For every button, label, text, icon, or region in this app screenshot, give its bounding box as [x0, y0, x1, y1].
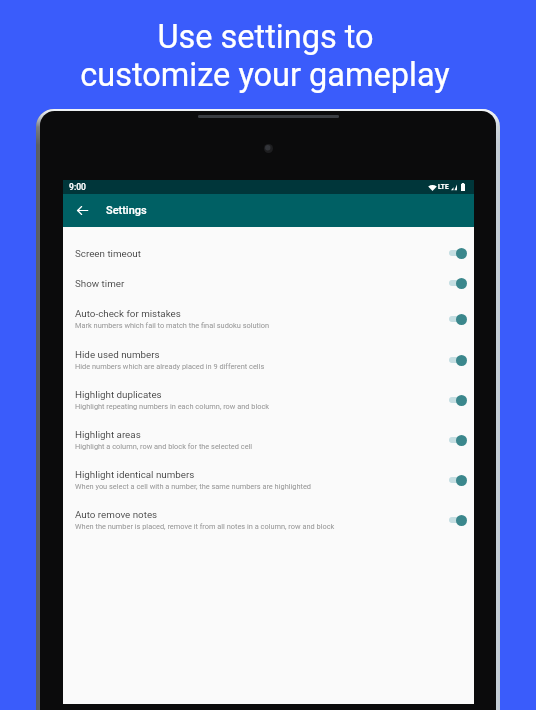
button[interactable]: Auto remove notes [63, 500, 474, 540]
staticText: 9:00 [69, 182, 86, 192]
staticText: Hide numbers which are already placed in… [75, 362, 265, 371]
staticText: Auto remove notes [75, 509, 158, 520]
button[interactable]: Toggle setting [442, 311, 466, 327]
staticText: Highlight a column, row and block for th… [75, 442, 253, 451]
staticText: Settings [106, 204, 147, 217]
staticText: Use settings to [157, 18, 374, 56]
staticText: Screen timeout [75, 248, 141, 259]
staticText: Mark numbers which fail to match the fin… [75, 321, 270, 330]
button[interactable]: Back [63, 194, 101, 227]
button[interactable]: Highlight areas [63, 420, 474, 460]
button[interactable]: Auto-check for mistakes [63, 298, 474, 339]
button[interactable]: Show timer [63, 268, 474, 298]
button[interactable]: Highlight identical numbers [63, 460, 474, 500]
button[interactable]: Toggle setting [442, 245, 466, 261]
staticText: Show timer [75, 278, 125, 289]
staticText: Highlight repeating numbers in each colu… [75, 402, 270, 411]
button[interactable]: Toggle setting [442, 432, 466, 448]
button[interactable]: Toggle setting [442, 512, 466, 528]
staticText: When you select a cell with a number, th… [75, 482, 312, 491]
staticText: Highlight identical numbers [75, 469, 195, 480]
button[interactable]: Toggle setting [442, 472, 466, 488]
staticText: When the number is placed, remove it fro… [75, 522, 335, 531]
staticText: Auto-check for mistakes [75, 308, 181, 319]
button[interactable]: Toggle setting [442, 392, 466, 408]
button[interactable]: Toggle setting [442, 352, 466, 368]
staticText: customize your gameplay [80, 56, 450, 94]
staticText: Highlight duplicates [75, 389, 162, 400]
button[interactable]: Highlight duplicates [63, 380, 474, 420]
button[interactable]: Hide used numbers [63, 339, 474, 380]
button[interactable]: Screen timeout [63, 238, 474, 268]
staticText: Highlight areas [75, 429, 141, 440]
button[interactable]: Toggle setting [442, 275, 466, 291]
staticText: Hide used numbers [75, 349, 160, 360]
staticText: LTE [438, 183, 449, 191]
